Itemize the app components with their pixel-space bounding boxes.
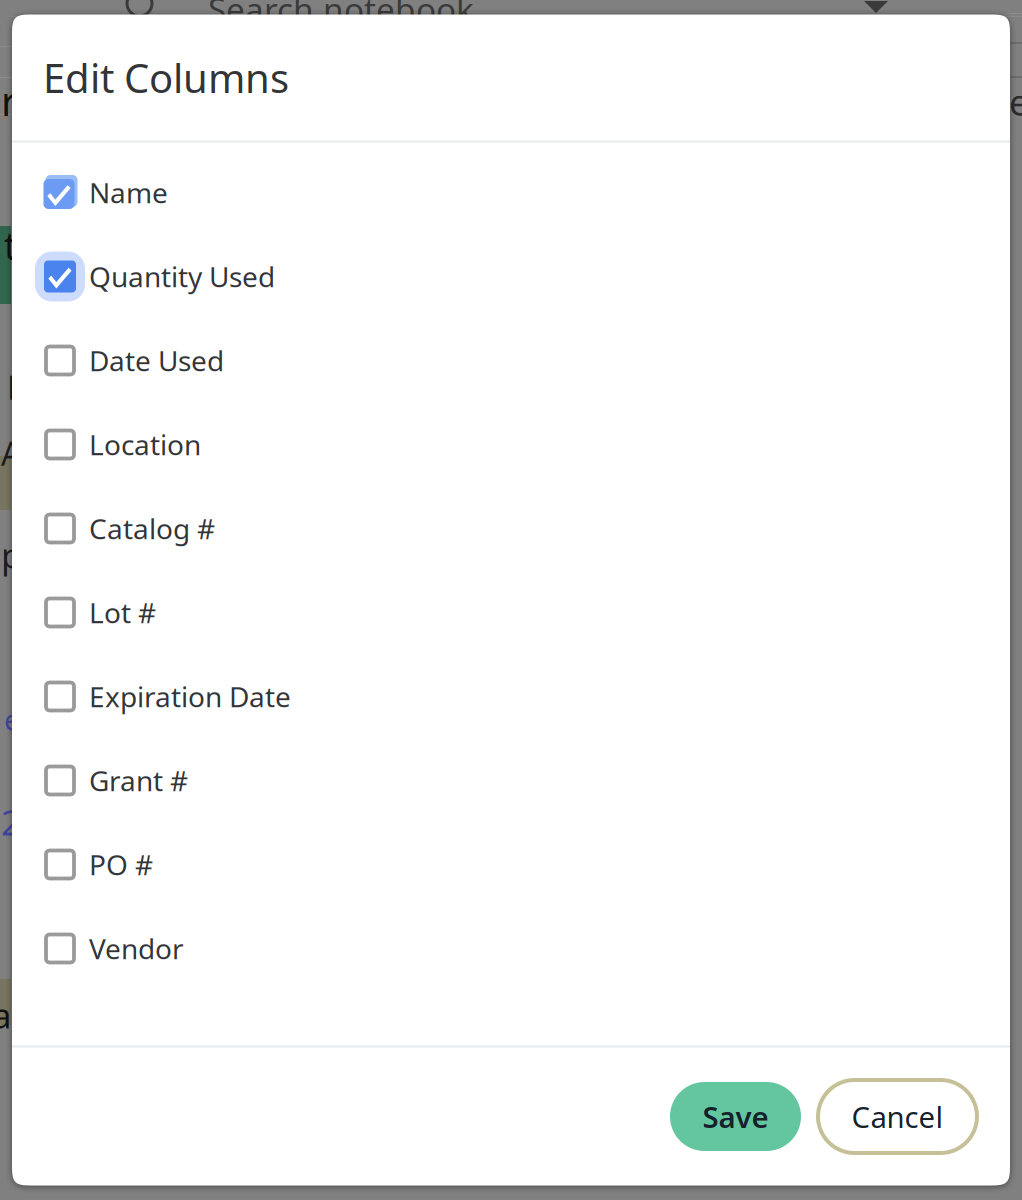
staticText: Quantity Used [89, 258, 275, 295]
staticText: al [0, 992, 20, 1038]
staticText: Cancel [851, 1097, 943, 1136]
button[interactable]: Grant # [12, 738, 1010, 822]
button[interactable]: Catalog # [12, 486, 1010, 570]
staticText: Search notebook [208, 0, 474, 31]
button[interactable]: Cancel [818, 1080, 977, 1153]
staticText: p [1, 532, 22, 578]
staticText: Location [89, 426, 201, 463]
staticText: Date Used [89, 342, 224, 379]
staticText: PO # [89, 846, 153, 883]
button[interactable]: Quantity Used [12, 234, 1010, 318]
button[interactable]: PO # [12, 822, 1010, 906]
button[interactable]: Date Used [12, 318, 1010, 402]
staticText: Vendor [89, 930, 184, 967]
staticText: A [1, 432, 21, 474]
staticText: e [4, 700, 21, 739]
staticText: Grant # [89, 762, 188, 799]
staticText: ev [1009, 78, 1022, 126]
button[interactable]: Save [670, 1082, 801, 1151]
staticText: Expiration Date [89, 678, 291, 715]
staticText: Save [702, 1097, 768, 1136]
staticText: 2 [1, 799, 21, 845]
button[interactable]: Vendor [12, 906, 1010, 990]
button[interactable]: Name [12, 150, 1010, 234]
button[interactable]: Location [12, 402, 1010, 486]
staticText: r [1, 74, 18, 127]
staticText: Edit Columns [43, 51, 289, 104]
staticText: L [7, 366, 24, 408]
staticText: t [4, 221, 17, 271]
staticText: Catalog # [89, 510, 215, 547]
button[interactable]: Lot # [12, 570, 1010, 654]
staticText: Lot # [89, 594, 156, 631]
button[interactable]: Expiration Date [12, 654, 1010, 738]
staticText: Name [89, 174, 168, 211]
